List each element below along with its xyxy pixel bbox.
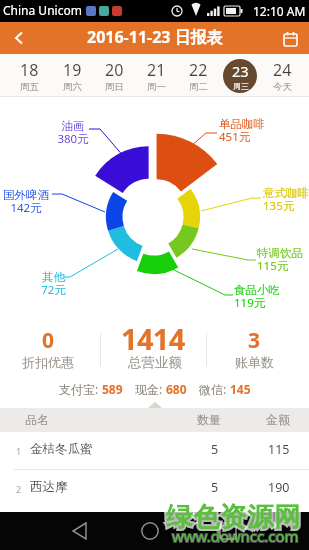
staticText: 数量 — [197, 412, 221, 427]
staticText: 20 — [105, 59, 124, 81]
staticText: 5 — [211, 479, 219, 496]
staticText: 0 — [42, 326, 55, 355]
staticText: 周五 — [20, 81, 39, 93]
staticText: 18 — [20, 59, 39, 81]
staticText: 今天 — [273, 81, 292, 93]
staticText: 5 — [211, 441, 219, 458]
staticText: 周日 — [105, 81, 124, 93]
staticText: www.downcc.com — [172, 526, 299, 546]
staticText: 22 — [189, 59, 208, 81]
button[interactable]: 20 — [93, 54, 135, 97]
staticText: 12:10 AM — [253, 3, 306, 19]
staticText: 现金: — [135, 381, 163, 397]
staticText: 总营业额 — [128, 354, 182, 371]
button[interactable]: 23 — [219, 54, 261, 97]
staticText: 支付宝: — [59, 381, 99, 397]
staticText: China Unicom — [3, 2, 82, 18]
staticText: 特调饮品 115元 — [257, 246, 303, 273]
staticText: 西达摩 — [30, 479, 68, 495]
staticText: 周二 — [189, 81, 208, 93]
button[interactable]: 19 — [51, 54, 93, 97]
staticText: 食品小吃 119元 — [234, 283, 280, 310]
button[interactable]: 18 — [8, 54, 51, 97]
button[interactable] — [196, 512, 256, 550]
staticText: 绿色资源网 — [166, 500, 301, 533]
staticText: 周一 — [147, 81, 166, 93]
staticText: 680 — [166, 381, 187, 397]
staticText: 23 — [232, 61, 249, 81]
button[interactable] — [123, 512, 183, 550]
staticText: 周三 — [233, 81, 249, 91]
staticText: 19 — [63, 59, 82, 81]
staticText: 金桔冬瓜蜜 — [30, 441, 93, 457]
staticText: www.downcc.com — [172, 526, 299, 546]
staticText: 145 — [230, 381, 251, 397]
staticText: 金额 — [266, 412, 290, 427]
staticText: 油画 380元 — [57, 119, 89, 146]
staticText: 2016-11-23 日报表 — [87, 26, 223, 48]
staticText: 24 — [273, 59, 292, 81]
staticText: 绿色资源网 — [166, 500, 301, 533]
button[interactable]: 24 — [261, 54, 303, 97]
button[interactable]: 21 — [135, 54, 177, 97]
button[interactable]: 2 — [0, 470, 309, 507]
staticText: 115 — [268, 441, 290, 458]
button[interactable]: 1 — [0, 432, 309, 469]
staticText: 周六 — [63, 81, 82, 93]
button[interactable] — [274, 22, 306, 54]
staticText: 21 — [147, 59, 166, 81]
staticText: 1 — [16, 445, 22, 457]
staticText: 2 — [16, 483, 22, 495]
staticText: 意式咖啡 135元 — [263, 186, 309, 213]
button[interactable]: 22 — [177, 54, 219, 97]
staticText: 品名 — [25, 412, 49, 427]
staticText: 589 — [102, 381, 123, 397]
staticText: 国外啤酒 142元 — [3, 188, 49, 215]
staticText: 3 — [248, 326, 261, 355]
staticText: 折扣优惠 — [22, 354, 74, 370]
staticText: 账单数 — [235, 354, 274, 370]
staticText: 1414 — [121, 319, 185, 358]
button[interactable] — [50, 512, 110, 550]
staticText: 微信: — [199, 381, 227, 397]
staticText: 190 — [268, 479, 290, 496]
staticText: 其他 72元 — [41, 270, 66, 297]
staticText: 单品咖啡 451元 — [219, 117, 265, 144]
button[interactable] — [4, 22, 34, 54]
